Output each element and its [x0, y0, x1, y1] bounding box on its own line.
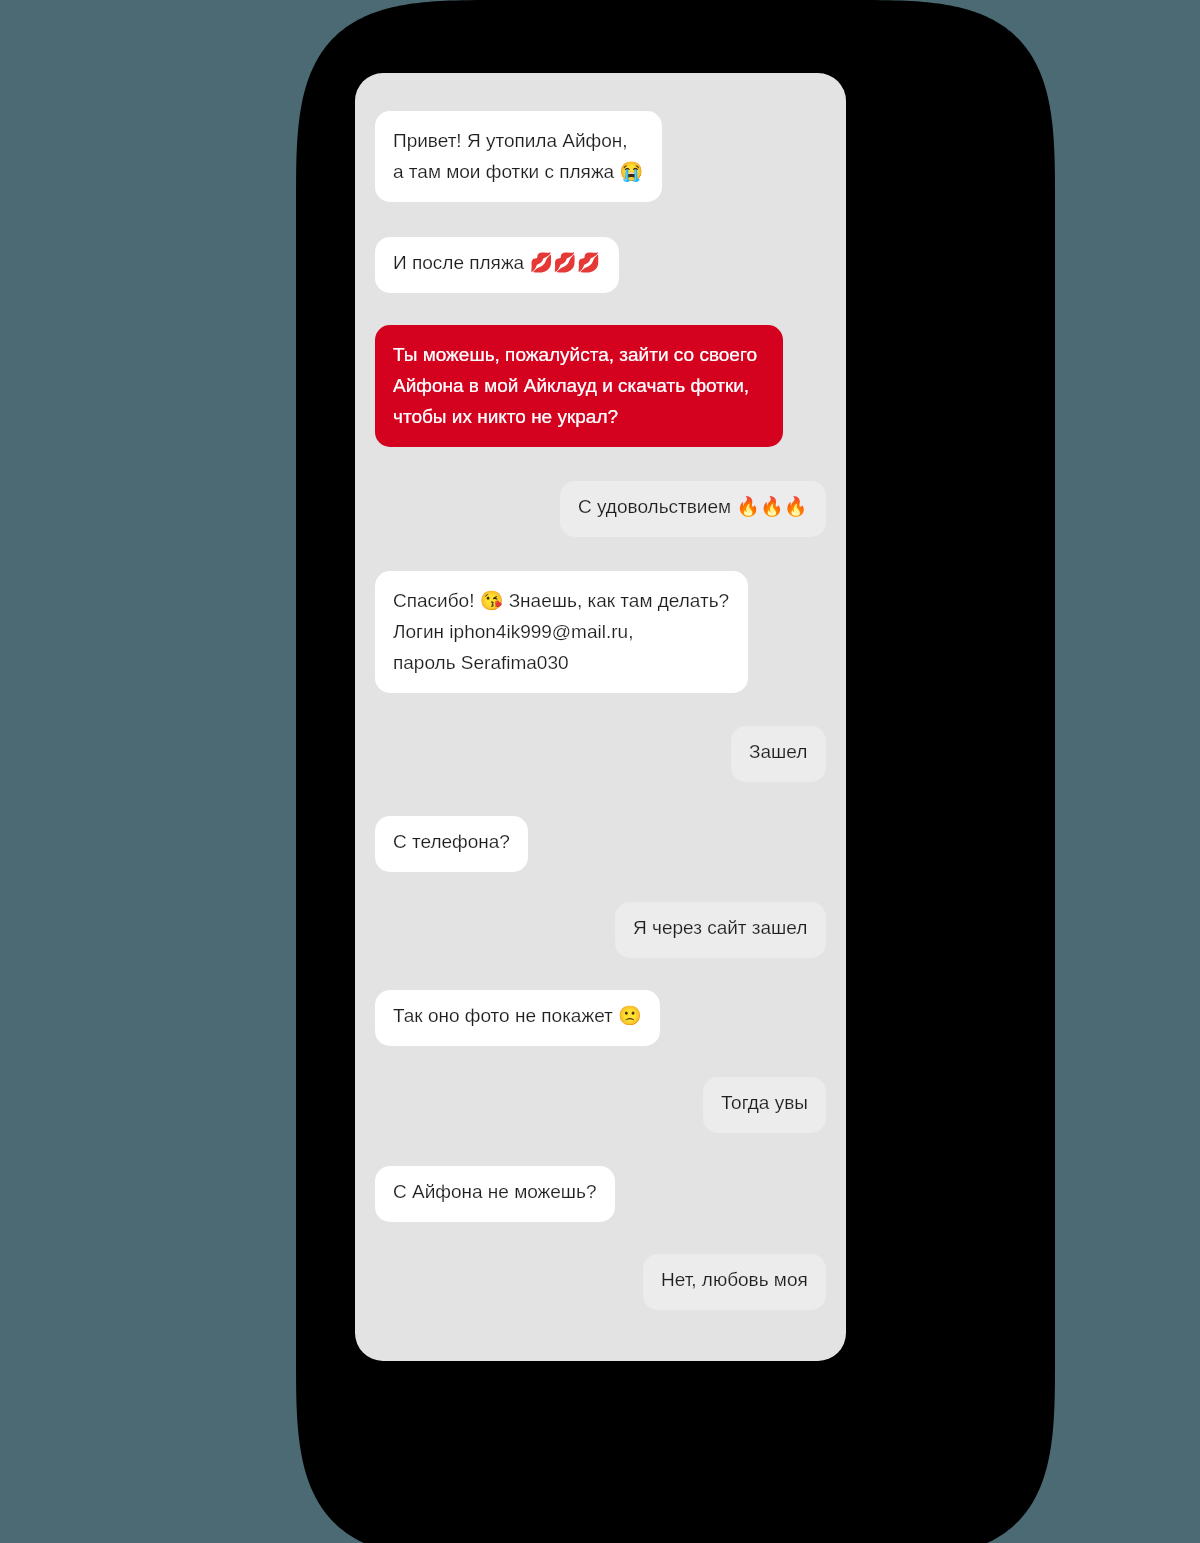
staticText: С Айфона не можешь? [393, 1173, 597, 1204]
staticText: Так оно фото не покажет 🙁 [393, 997, 642, 1028]
staticText: Зашел [749, 733, 808, 764]
button[interactable]: С телефона? [375, 816, 528, 872]
button[interactable]: Спасибо! 😘 Знаешь, как там делать? Логин… [375, 571, 748, 693]
button[interactable]: Ты можешь, пожалуйста, зайти со своего А… [375, 325, 783, 447]
staticText: Тогда увы [721, 1084, 808, 1115]
button[interactable]: Нет, любовь моя [643, 1254, 826, 1310]
button[interactable]: Привет! Я утопила Айфон, а там мои фотки… [375, 111, 662, 202]
button[interactable]: С Айфона не можешь? [375, 1166, 615, 1222]
staticText: С телефона? [393, 823, 510, 854]
staticText: Я через сайт зашел [633, 909, 808, 940]
staticText: Ты можешь, пожалуйста, зайти со своего А… [393, 336, 757, 429]
button[interactable]: Так оно фото не покажет 🙁 [375, 990, 660, 1046]
staticText: Привет! Я утопила Айфон, а там мои фотки… [393, 122, 644, 184]
button[interactable]: Зашел [731, 726, 826, 782]
staticText: И после пляжа 💋💋💋 [393, 244, 601, 275]
staticText: С удовольствием 🔥🔥🔥 [578, 488, 808, 519]
button[interactable]: Тогда увы [703, 1077, 826, 1133]
staticText: Нет, любовь моя [661, 1261, 808, 1292]
button[interactable]: Я через сайт зашел [615, 902, 826, 958]
button[interactable]: И после пляжа 💋💋💋 [375, 237, 619, 293]
button[interactable]: С удовольствием 🔥🔥🔥 [560, 481, 826, 537]
staticText: Спасибо! 😘 Знаешь, как там делать? Логин… [393, 582, 730, 675]
